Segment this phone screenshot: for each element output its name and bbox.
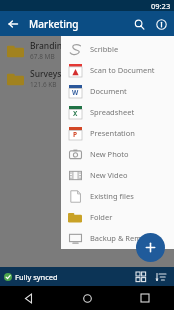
button[interactable]: P xyxy=(61,122,174,143)
staticText: W xyxy=(72,88,79,97)
staticText: Scribble xyxy=(90,44,119,54)
button[interactable]: Add xyxy=(136,233,165,262)
staticText: Branding xyxy=(30,40,68,52)
staticText: Existing files xyxy=(90,191,134,201)
button[interactable]: Scan to Document xyxy=(61,59,174,80)
staticText: New Photo xyxy=(90,149,129,159)
staticText: New Video xyxy=(90,170,128,180)
button[interactable]: Grid view xyxy=(132,268,150,286)
button[interactable]: Backup & Remote Access xyxy=(61,227,174,248)
button[interactable]: X xyxy=(61,101,174,122)
button[interactable]: Existing files xyxy=(61,185,174,206)
staticText: Fully synced xyxy=(15,272,58,282)
staticText: 09:23 xyxy=(151,1,171,11)
staticText: 121.6 KB xyxy=(30,80,57,89)
button[interactable]: W xyxy=(61,80,174,101)
button[interactable]: Recents xyxy=(116,286,174,310)
button[interactable]: Folder xyxy=(61,206,174,227)
button[interactable]: Home xyxy=(58,286,116,310)
staticText: P xyxy=(73,130,78,139)
staticText: Surveys xyxy=(30,68,62,80)
button[interactable]: Scribble xyxy=(61,38,174,59)
button[interactable]: New Photo xyxy=(61,143,174,164)
staticText: Folder xyxy=(90,212,113,222)
staticText: Scan to Document xyxy=(90,65,155,75)
staticText: Backup & Remote Access xyxy=(90,233,174,243)
staticText: Presentation xyxy=(90,128,135,138)
button[interactable]: Branding xyxy=(0,36,174,64)
button[interactable]: Sort xyxy=(152,268,170,286)
staticText: X xyxy=(73,109,78,118)
staticText: 67.8 MB xyxy=(30,52,55,61)
button[interactable]: New Video xyxy=(61,164,174,185)
button[interactable]: Search xyxy=(128,13,150,35)
button[interactable]: Back xyxy=(0,286,58,310)
button[interactable]: Surveys xyxy=(0,64,174,92)
staticText: Marketing xyxy=(29,17,79,31)
staticText: Spreadsheet xyxy=(90,107,135,117)
staticText: Document xyxy=(90,86,127,96)
button[interactable]: Back xyxy=(0,11,25,36)
button[interactable]: Info xyxy=(150,13,172,35)
